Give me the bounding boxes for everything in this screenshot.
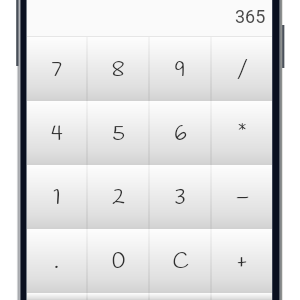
button[interactable]: 9 xyxy=(150,37,210,101)
staticText: 1 xyxy=(53,183,61,212)
button[interactable]: 7 xyxy=(27,37,86,101)
staticText: 3 xyxy=(174,183,186,212)
button[interactable]: / xyxy=(212,37,272,101)
button[interactable] xyxy=(88,293,148,300)
staticText: + xyxy=(237,247,247,276)
staticText: * xyxy=(237,119,247,148)
staticText: / xyxy=(237,55,248,84)
button[interactable]: 1 xyxy=(27,165,86,229)
button[interactable]: 5 xyxy=(88,101,148,165)
button[interactable]: 2 xyxy=(88,165,148,229)
staticText: 9 xyxy=(174,55,186,84)
staticText: 6 xyxy=(174,119,187,148)
staticText: 8 xyxy=(111,55,125,84)
button[interactable]: C xyxy=(150,229,210,293)
staticText: 7 xyxy=(51,55,62,84)
button[interactable] xyxy=(27,293,86,300)
button[interactable]: . xyxy=(27,229,86,293)
staticText: C xyxy=(172,247,189,276)
button[interactable]: 3 xyxy=(150,165,210,229)
button[interactable]: 6 xyxy=(150,101,210,165)
staticText: 0 xyxy=(111,247,126,276)
staticText: 365 xyxy=(235,6,266,27)
button[interactable] xyxy=(212,293,272,300)
button[interactable]: – xyxy=(212,165,272,229)
button[interactable]: 4 xyxy=(27,101,86,165)
button[interactable] xyxy=(150,293,210,300)
staticText: – xyxy=(235,183,250,212)
button[interactable]: 0 xyxy=(88,229,148,293)
staticText: 4 xyxy=(51,119,63,148)
button[interactable]: 8 xyxy=(88,37,148,101)
button[interactable]: + xyxy=(212,229,272,293)
staticText: 2 xyxy=(112,183,125,212)
staticText: . xyxy=(54,247,59,276)
staticText: 5 xyxy=(112,119,125,148)
button[interactable]: * xyxy=(212,101,272,165)
